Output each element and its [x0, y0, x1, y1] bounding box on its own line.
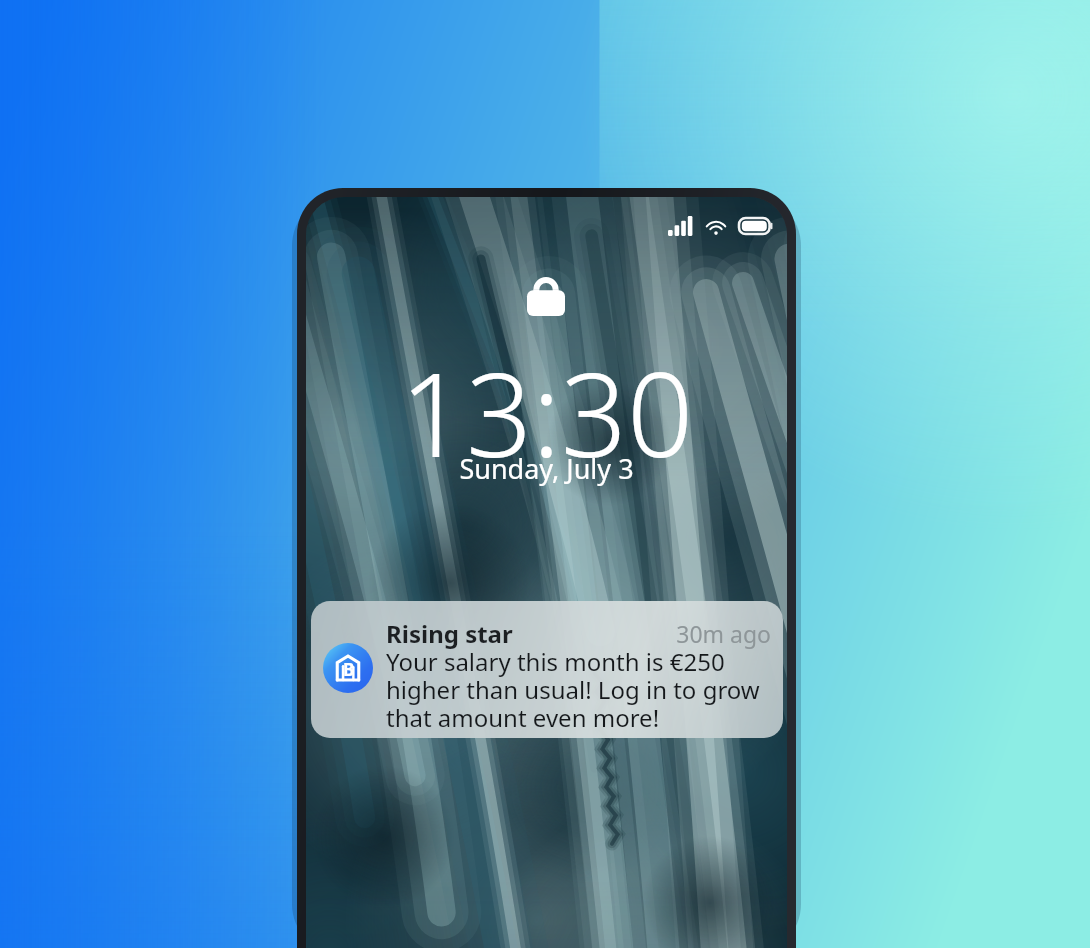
staticText: 13:30	[306, 333, 787, 491]
staticText: B	[343, 658, 355, 681]
staticText: Rising star	[386, 617, 513, 650]
other: Cellular signal	[668, 216, 694, 236]
other: Wi-Fi	[704, 216, 728, 236]
other: Locked	[527, 270, 565, 316]
staticText: Your salary this month is €250 higher th…	[386, 645, 774, 734]
staticText: 30m ago	[514, 618, 771, 649]
other: Battery	[739, 216, 773, 236]
button[interactable]: B	[311, 601, 783, 738]
staticText: Sunday, July 3	[306, 450, 787, 487]
